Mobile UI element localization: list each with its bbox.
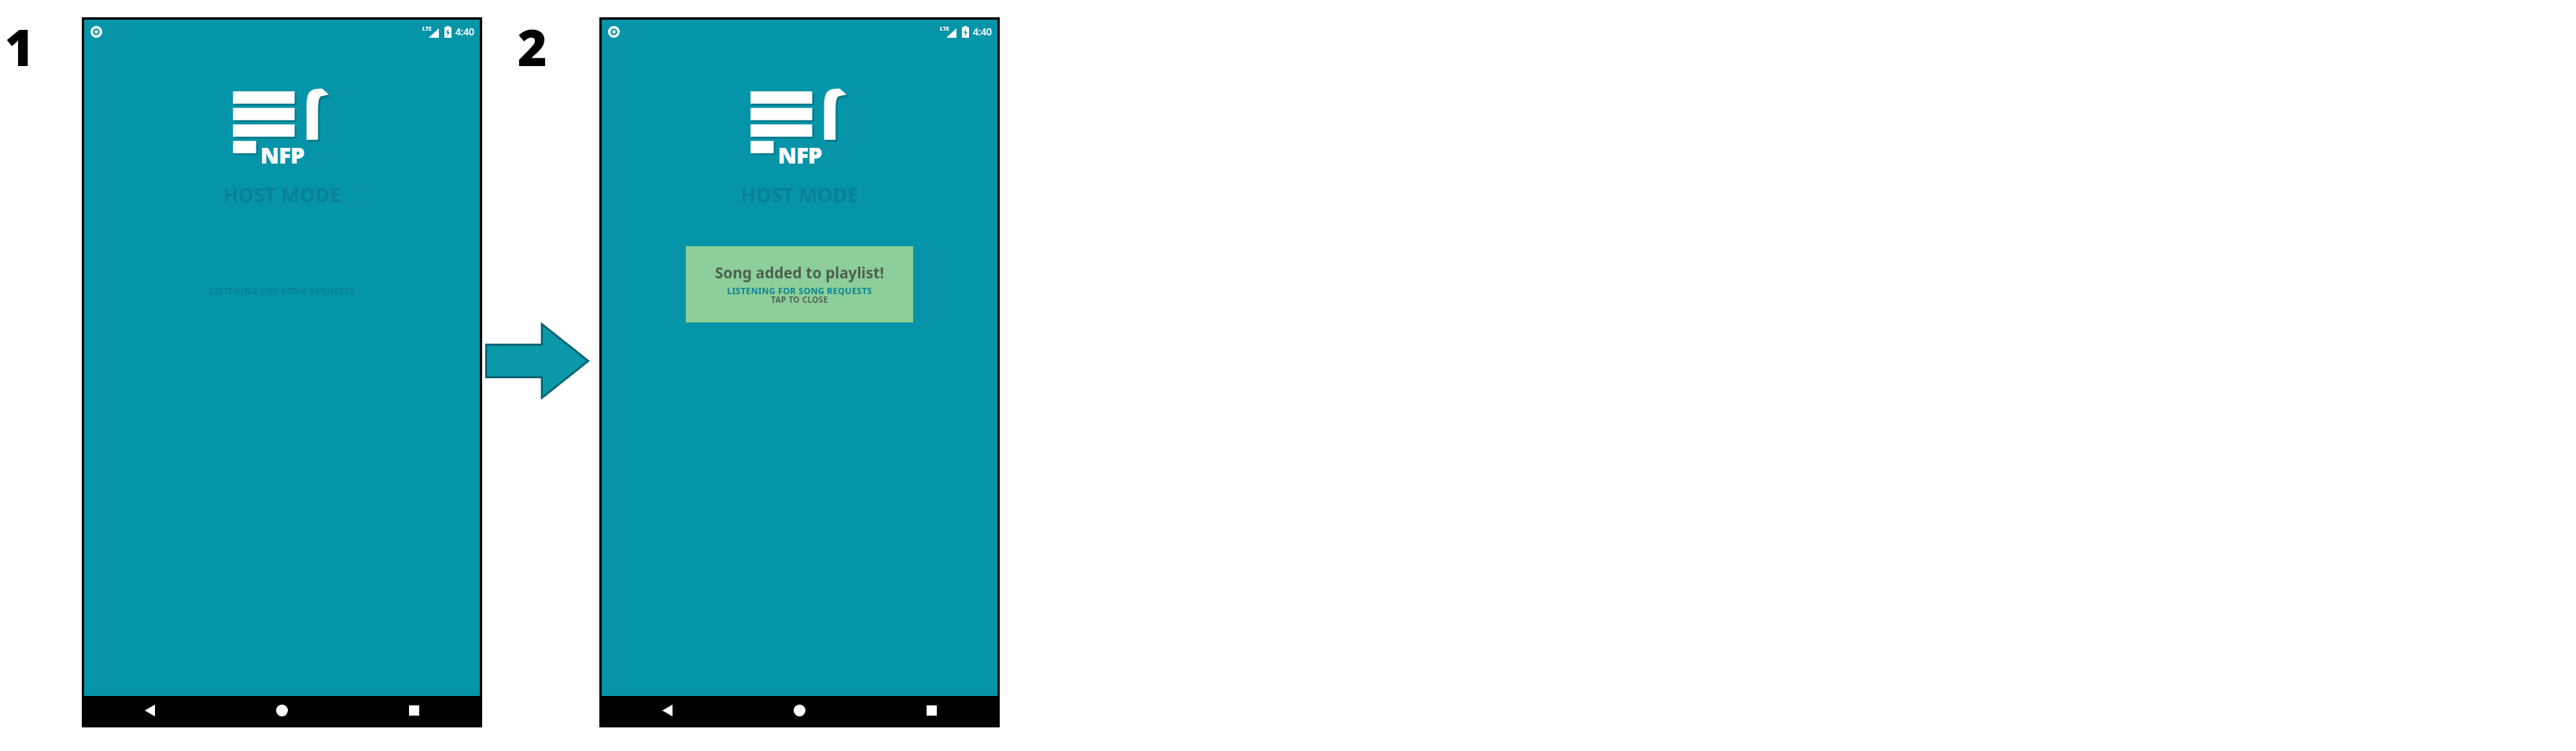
- button[interactable]: Back: [84, 696, 216, 725]
- button[interactable]: Home: [216, 696, 348, 725]
- staticText: LISTENING FOR SONG REQUESTS: [84, 285, 480, 296]
- staticText: 2: [518, 13, 547, 81]
- staticText: LTE: [422, 25, 432, 33]
- staticText: 1: [5, 13, 35, 81]
- staticText: LTE: [940, 25, 949, 33]
- button[interactable]: Song added to playlist!: [686, 246, 913, 322]
- button[interactable]: Back: [602, 696, 733, 725]
- button[interactable]: Recent apps: [348, 696, 480, 725]
- other: App running notification: [608, 26, 620, 38]
- staticText: Song added to playlist!: [715, 263, 884, 283]
- staticText: HOST MODE: [602, 181, 997, 208]
- staticText: 4:40: [455, 25, 474, 38]
- other: App running notification: [90, 26, 102, 38]
- staticText: 4:40: [973, 25, 992, 38]
- staticText: NFP: [778, 139, 822, 170]
- staticText: HOST MODE: [84, 181, 480, 208]
- staticText: TAP TO CLOSE: [771, 294, 828, 305]
- button[interactable]: Recent apps: [865, 696, 997, 725]
- staticText: NFP: [260, 139, 304, 170]
- button[interactable]: Home: [733, 696, 865, 725]
- staticText: LISTENING FOR SONG REQUESTS: [602, 285, 997, 296]
